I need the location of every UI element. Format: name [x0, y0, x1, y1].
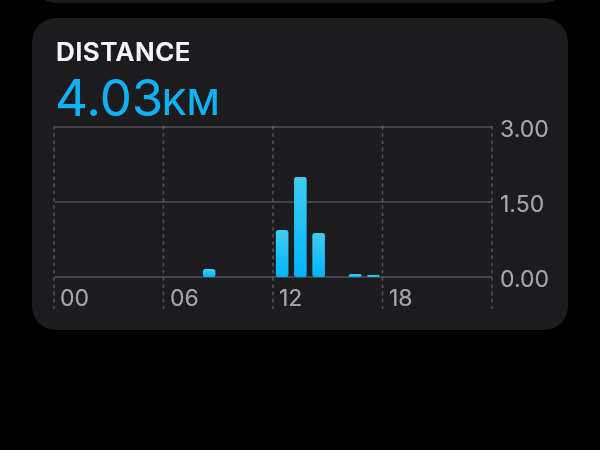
- staticText: 1.50: [500, 190, 545, 218]
- staticText: 12: [279, 284, 303, 312]
- staticText: DISTANCE: [56, 36, 191, 67]
- staticText: 4.03: [55, 67, 164, 129]
- staticText: 00: [60, 284, 90, 312]
- button[interactable]: DISTANCE: [32, 18, 568, 330]
- staticText: 18: [389, 284, 413, 312]
- staticText: 0.00: [500, 265, 549, 293]
- button[interactable]: [32, 0, 568, 3]
- staticText: KM: [162, 80, 220, 124]
- staticText: 06: [170, 284, 199, 312]
- staticText: 3.00: [500, 115, 549, 143]
